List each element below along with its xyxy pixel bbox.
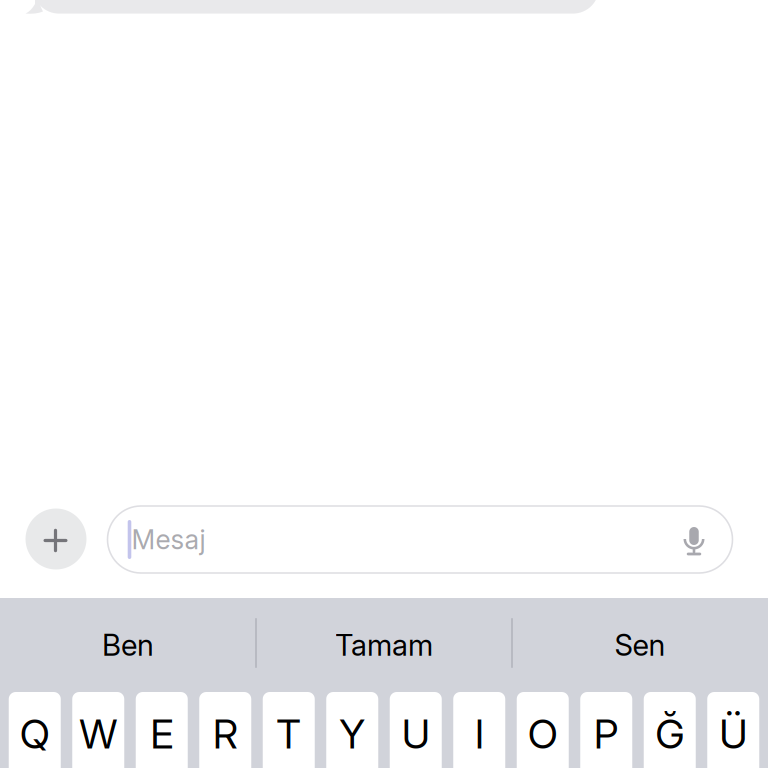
- staticText: Q: [20, 710, 50, 758]
- staticText: E: [150, 710, 173, 758]
- button[interactable]: T: [263, 692, 315, 768]
- button[interactable]: P: [580, 692, 632, 768]
- button[interactable]: W: [72, 692, 124, 768]
- button[interactable]: Sen: [512, 598, 768, 692]
- button[interactable]: Tamam: [256, 598, 512, 692]
- button[interactable]: Ğ: [644, 692, 696, 768]
- button[interactable]: O: [517, 692, 569, 768]
- staticText: I: [475, 710, 484, 758]
- button[interactable]: Ben: [0, 598, 256, 692]
- staticText: Sen: [614, 627, 665, 663]
- button[interactable]: Q: [9, 692, 61, 768]
- staticText: Tamam: [335, 627, 433, 663]
- button[interactable]: R: [199, 692, 251, 768]
- staticText: Ü: [719, 710, 747, 758]
- staticText: Mesaj: [131, 523, 205, 556]
- staticText: Ğ: [655, 710, 684, 758]
- button[interactable]: Mesaj: [107, 506, 732, 573]
- button[interactable]: Add attachment: [25, 508, 86, 569]
- staticText: R: [213, 710, 238, 758]
- staticText: P: [594, 710, 619, 758]
- button[interactable]: E: [136, 692, 188, 768]
- staticText: U: [402, 710, 430, 758]
- button[interactable]: Y: [326, 692, 378, 768]
- staticText: Ben: [102, 627, 154, 663]
- button[interactable]: Ü: [707, 692, 759, 768]
- button[interactable]: U: [390, 692, 442, 768]
- staticText: W: [79, 710, 117, 758]
- staticText: Y: [339, 710, 365, 758]
- staticText: T: [276, 710, 301, 758]
- staticText: O: [528, 710, 558, 758]
- button[interactable]: I: [453, 692, 505, 768]
